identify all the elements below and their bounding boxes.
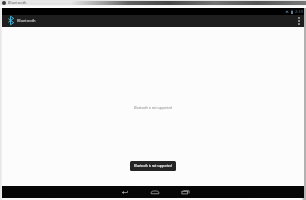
button[interactable]: Back xyxy=(110,186,140,198)
button[interactable]: Bluetooth is not supported xyxy=(130,161,176,171)
staticText: Bluetooth is not supported xyxy=(134,164,172,168)
staticText: 2:39 xyxy=(295,9,303,14)
staticText: Bluetooth is not supported xyxy=(134,106,172,110)
staticText: Bluetooth xyxy=(8,0,27,5)
button[interactable]: Home xyxy=(140,186,170,198)
button[interactable]: More options xyxy=(294,15,304,27)
staticText: Bluetooth xyxy=(17,18,36,23)
button[interactable]: App icon xyxy=(6,15,15,25)
button[interactable]: Recents xyxy=(170,186,200,198)
